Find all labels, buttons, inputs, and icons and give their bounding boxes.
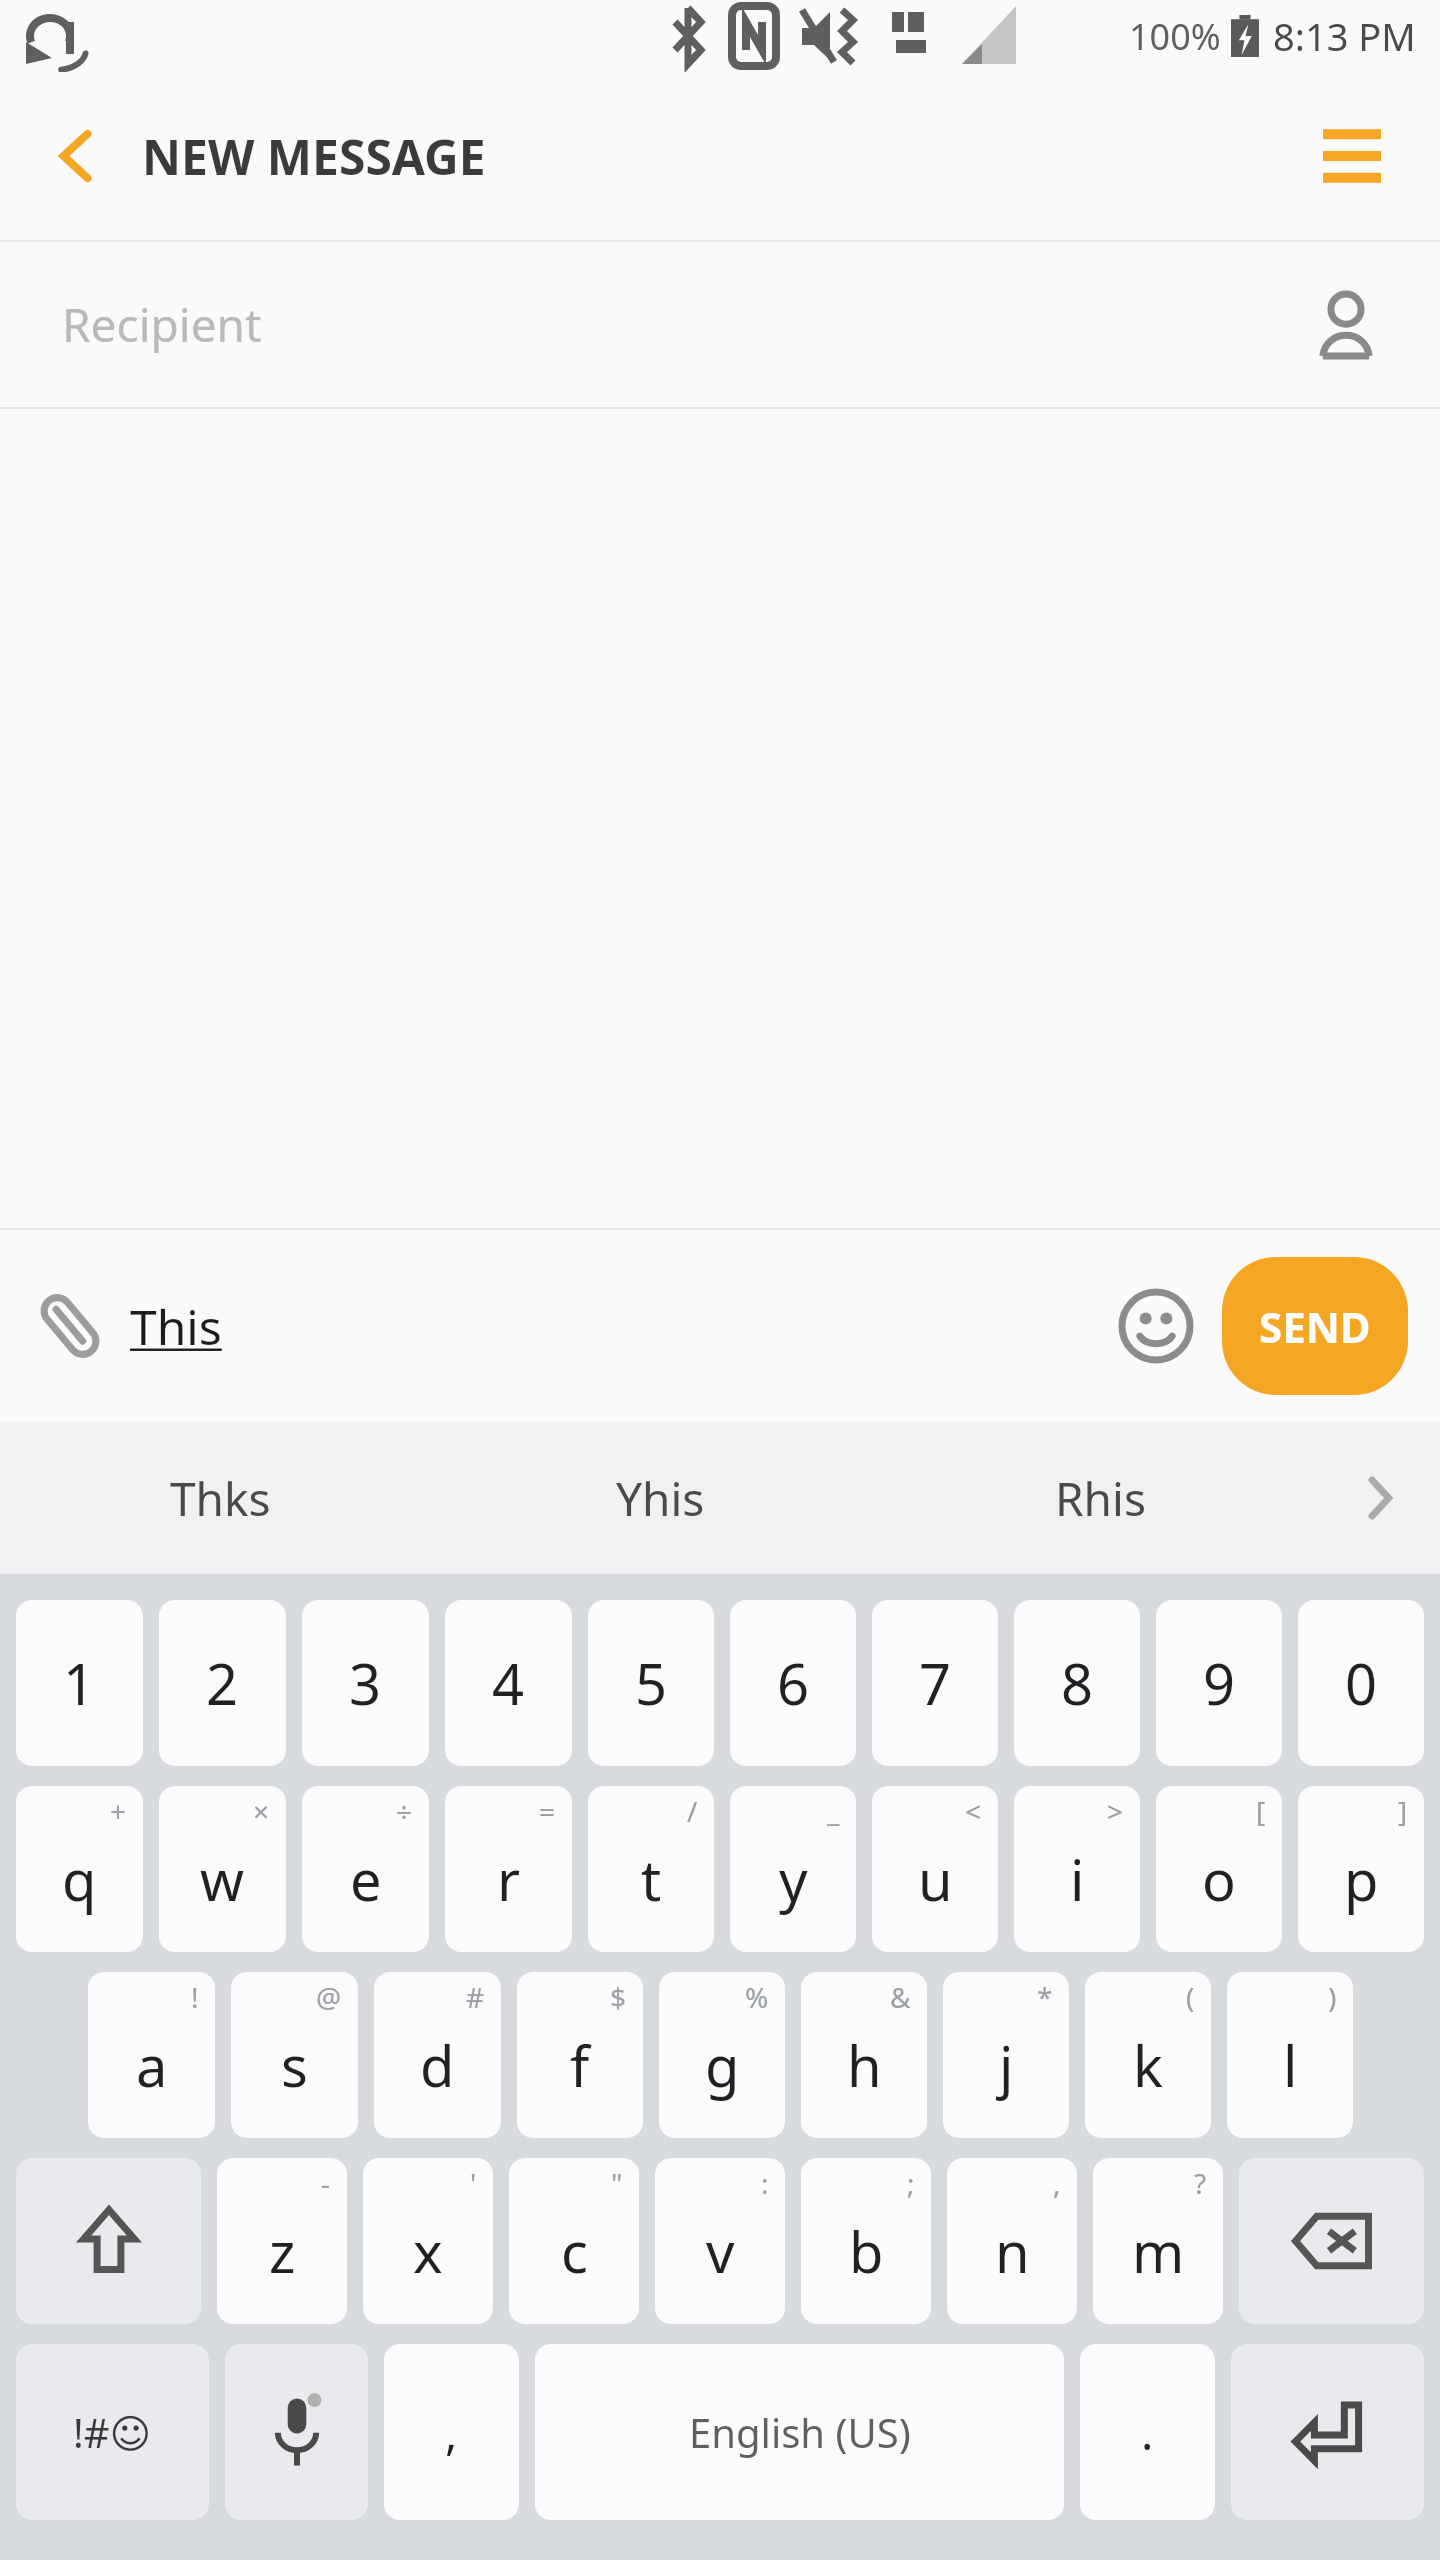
- button[interactable]: Thks: [0, 1422, 440, 1574]
- staticText: v: [706, 2213, 735, 2289]
- staticText: f: [570, 2027, 590, 2103]
- button[interactable]: *: [943, 1972, 1069, 2138]
- button[interactable]: Back: [28, 108, 124, 204]
- button[interactable]: @: [231, 1972, 358, 2138]
- button[interactable]: This: [130, 1294, 222, 1359]
- staticText: Yhis: [616, 1467, 705, 1530]
- button[interactable]: &: [801, 1972, 927, 2138]
- button[interactable]: +: [16, 1786, 143, 1952]
- button[interactable]: ÷: [302, 1786, 429, 1952]
- button[interactable]: Contacts: [1298, 277, 1394, 373]
- staticText: 8:13 PM: [1273, 10, 1416, 62]
- staticText: ÷: [396, 1792, 413, 1830]
- button[interactable]: SEND: [1222, 1257, 1408, 1395]
- button[interactable]: Emoji: [1106, 1276, 1206, 1376]
- button[interactable]: Rhis: [880, 1422, 1320, 1574]
- button[interactable]: Voice input: [225, 2344, 368, 2520]
- staticText: 0: [1345, 1645, 1378, 1721]
- staticText: 6: [777, 1645, 810, 1721]
- staticText: [: [1256, 1792, 1266, 1830]
- staticText: _: [827, 1792, 840, 1830]
- staticText: ?: [1194, 2164, 1207, 2202]
- staticText: !: [191, 1978, 199, 2016]
- button[interactable]: More suggestions: [1320, 1422, 1440, 1574]
- staticText: l: [1283, 2027, 1298, 2103]
- staticText: @: [316, 1978, 342, 2016]
- button[interactable]: 2: [159, 1600, 286, 1766]
- staticText: /: [687, 1792, 698, 1830]
- staticText: &: [890, 1978, 911, 2016]
- button[interactable]: !#☺: [16, 2344, 209, 2520]
- button[interactable]: 1: [16, 1600, 143, 1766]
- staticText: Recipient: [62, 293, 262, 356]
- button[interactable]: 8: [1014, 1600, 1140, 1766]
- staticText: +: [110, 1792, 127, 1830]
- button[interactable]: (: [1085, 1972, 1211, 2138]
- staticText: c: [561, 2213, 588, 2289]
- staticText: ,: [445, 2401, 458, 2464]
- button[interactable]: ": [509, 2158, 639, 2324]
- staticText: p: [1344, 1841, 1379, 1917]
- button[interactable]: 5: [588, 1600, 714, 1766]
- staticText: w: [200, 1841, 245, 1917]
- staticText: =: [539, 1792, 556, 1830]
- button[interactable]: !: [88, 1972, 215, 2138]
- staticText: r: [497, 1841, 521, 1917]
- staticText: o: [1202, 1841, 1236, 1917]
- button[interactable]: English (US): [535, 2344, 1064, 2520]
- button[interactable]: 0: [1298, 1600, 1424, 1766]
- button[interactable]: Menu: [1302, 106, 1402, 206]
- button[interactable]: 4: [445, 1600, 572, 1766]
- button[interactable]: ,: [384, 2344, 519, 2520]
- button[interactable]: ]: [1298, 1786, 1424, 1952]
- button[interactable]: ×: [159, 1786, 286, 1952]
- button[interactable]: =: [445, 1786, 572, 1952]
- button[interactable]: $: [517, 1972, 643, 2138]
- button[interactable]: Recipient: [0, 242, 1440, 407]
- staticText: b: [849, 2213, 884, 2289]
- button[interactable]: .: [1080, 2344, 1215, 2520]
- staticText: 1: [63, 1645, 96, 1721]
- button[interactable]: ?: [1093, 2158, 1223, 2324]
- button[interactable]: ;: [801, 2158, 931, 2324]
- button[interactable]: Enter: [1231, 2344, 1424, 2520]
- button[interactable]: 6: [730, 1600, 856, 1766]
- staticText: Rhis: [1055, 1467, 1146, 1530]
- staticText: e: [350, 1841, 382, 1917]
- button[interactable]: Backspace: [1239, 2158, 1424, 2324]
- staticText: 3: [349, 1645, 382, 1721]
- button[interactable]: 9: [1156, 1600, 1282, 1766]
- button[interactable]: ,: [947, 2158, 1077, 2324]
- button[interactable]: 7: [872, 1600, 998, 1766]
- staticText: SEND: [1259, 1298, 1371, 1355]
- button[interactable]: >: [1014, 1786, 1140, 1952]
- staticText: y: [779, 1841, 808, 1917]
- staticText: NEW MESSAGE: [142, 124, 486, 189]
- staticText: 7: [919, 1645, 952, 1721]
- staticText: ×: [253, 1792, 270, 1830]
- button[interactable]: [: [1156, 1786, 1282, 1952]
- button[interactable]: :: [655, 2158, 785, 2324]
- button[interactable]: Shift: [16, 2158, 201, 2324]
- staticText: $: [610, 1978, 627, 2016]
- button[interactable]: Yhis: [440, 1422, 880, 1574]
- staticText: ): [1328, 1978, 1337, 2016]
- staticText: ': [470, 2164, 477, 2202]
- button[interactable]: <: [872, 1786, 998, 1952]
- button[interactable]: ': [363, 2158, 493, 2324]
- button[interactable]: 3: [302, 1600, 429, 1766]
- staticText: .: [1141, 2401, 1154, 2464]
- button[interactable]: #: [374, 1972, 501, 2138]
- button[interactable]: ): [1227, 1972, 1353, 2138]
- staticText: z: [269, 2213, 296, 2289]
- staticText: *: [1037, 1978, 1053, 2016]
- button[interactable]: -: [217, 2158, 347, 2324]
- button[interactable]: Attach: [22, 1278, 118, 1374]
- button[interactable]: /: [588, 1786, 714, 1952]
- staticText: j: [999, 2027, 1014, 2103]
- staticText: u: [918, 1841, 953, 1917]
- staticText: 2: [206, 1645, 239, 1721]
- staticText: ]: [1398, 1792, 1408, 1830]
- button[interactable]: %: [659, 1972, 785, 2138]
- button[interactable]: _: [730, 1786, 856, 1952]
